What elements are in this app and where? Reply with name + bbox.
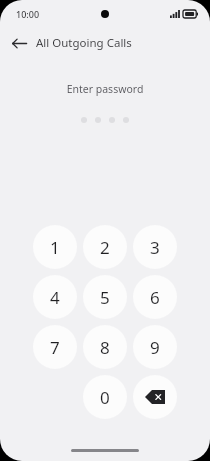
staticText: 5 bbox=[100, 286, 110, 309]
button[interactable]: Backspace bbox=[133, 375, 177, 419]
staticText: 8 bbox=[100, 336, 110, 359]
button[interactable]: 1 bbox=[33, 225, 77, 269]
staticText: 4 bbox=[50, 286, 60, 309]
staticText: 10:00 bbox=[16, 8, 40, 20]
button[interactable]: 5 bbox=[83, 275, 127, 319]
button[interactable]: 0 bbox=[83, 375, 127, 419]
staticText: Enter password bbox=[0, 82, 210, 96]
staticText: 0 bbox=[100, 386, 110, 409]
button[interactable]: 3 bbox=[133, 225, 177, 269]
button[interactable]: Back bbox=[6, 30, 32, 56]
staticText: All Outgoing Calls bbox=[36, 35, 132, 51]
button[interactable]: 2 bbox=[83, 225, 127, 269]
staticText: 3 bbox=[150, 236, 160, 259]
button[interactable]: 4 bbox=[33, 275, 77, 319]
button[interactable]: 8 bbox=[83, 325, 127, 369]
button[interactable]: 6 bbox=[133, 275, 177, 319]
staticText: 6 bbox=[150, 286, 160, 309]
staticText: 7 bbox=[50, 336, 60, 359]
staticText: 1 bbox=[50, 236, 60, 259]
button[interactable]: 9 bbox=[133, 325, 177, 369]
staticText: 2 bbox=[100, 236, 110, 259]
button[interactable]: 7 bbox=[33, 325, 77, 369]
staticText: 9 bbox=[150, 336, 160, 359]
